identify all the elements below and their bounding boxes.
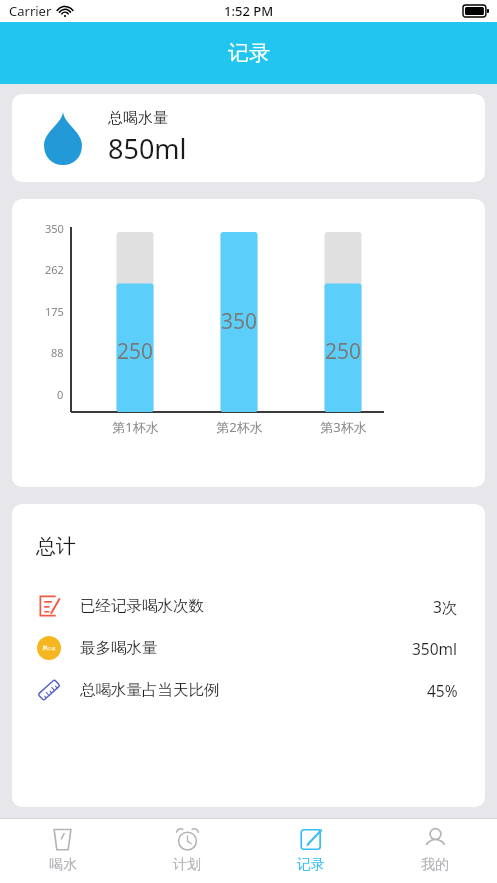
button[interactable]: 总喝水量占当天比例 — [12, 669, 485, 711]
staticText: 175 — [45, 304, 64, 319]
button[interactable]: 喝水 — [0, 819, 125, 883]
staticText: 我的 — [421, 856, 449, 874]
staticText: 88 — [51, 345, 64, 360]
staticText: 总喝水量占当天比例 — [80, 680, 220, 700]
staticText: 262 — [45, 262, 64, 277]
staticText: 总计 — [36, 534, 76, 559]
staticText: 记录 — [297, 856, 325, 874]
staticText: 1:52 PM — [224, 2, 274, 20]
staticText: 第2杯水 — [216, 418, 263, 436]
staticText: Carrier — [9, 2, 52, 20]
button[interactable]: 350 — [12, 199, 485, 487]
button[interactable]: 已经记录喝水次数 — [12, 585, 485, 627]
staticText: 第3杯水 — [320, 418, 367, 436]
button[interactable]: 最多喝水量 — [12, 627, 485, 669]
staticText: 3次 — [433, 596, 458, 617]
staticText: 第1杯水 — [112, 418, 159, 436]
staticText: 已经记录喝水次数 — [80, 596, 204, 616]
staticText: 250 — [325, 337, 362, 366]
button[interactable]: 我的 — [373, 819, 497, 883]
staticText: 350 — [45, 221, 64, 236]
staticText: 850ml — [108, 130, 187, 167]
staticText: 最多喝水量 — [80, 638, 158, 658]
staticText: 350ml — [412, 638, 458, 659]
staticText: 0 — [57, 387, 64, 402]
button[interactable]: 记录 — [249, 819, 373, 883]
staticText: 计划 — [173, 856, 201, 874]
staticText: 总喝水量 — [108, 109, 168, 128]
staticText: 250 — [117, 337, 154, 366]
staticText: 45% — [427, 680, 458, 701]
staticText: 350 — [221, 307, 258, 336]
staticText: 记录 — [228, 40, 270, 66]
button[interactable]: 总喝水量 — [12, 94, 485, 182]
staticText: 喝水 — [49, 856, 77, 874]
button[interactable]: 计划 — [125, 819, 249, 883]
